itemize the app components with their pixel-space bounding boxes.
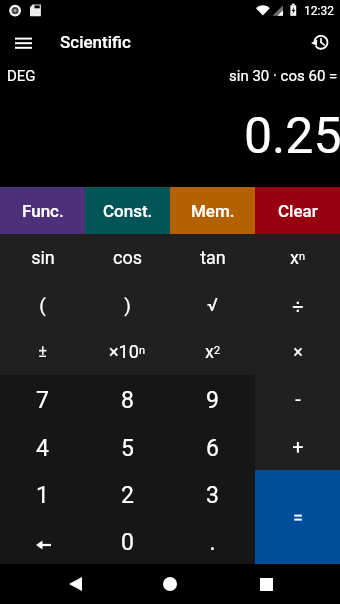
staticText: 4 [36, 435, 49, 462]
button[interactable]: Mem. [170, 187, 255, 234]
staticText: Func. [22, 201, 64, 221]
button[interactable]: 3 [170, 470, 255, 517]
staticText: n [139, 344, 146, 357]
staticText: 5 [121, 435, 134, 462]
staticText: 6 [206, 435, 219, 462]
staticText: sin 30 · cos 60 = [229, 67, 338, 85]
staticText: Clear [278, 201, 318, 221]
button[interactable]: = [255, 470, 340, 564]
staticText: Scientific [60, 32, 131, 52]
staticText: . [209, 529, 216, 556]
staticText: 8 [121, 387, 134, 414]
staticText: 1 [36, 482, 49, 509]
staticText: ×10 [109, 341, 139, 362]
button[interactable]: 2 [85, 470, 170, 517]
staticText: n [299, 250, 306, 263]
button[interactable]: 8 [85, 375, 170, 422]
staticText: = [293, 507, 303, 528]
button[interactable]: sin [0, 234, 85, 281]
staticText: ) [124, 294, 131, 316]
staticText: cos [113, 247, 142, 268]
staticText: - [295, 387, 301, 410]
staticText: 9 [206, 387, 219, 414]
button[interactable]: x [255, 234, 340, 281]
button[interactable]: Navigation menu [0, 22, 46, 62]
staticText: √ [207, 294, 218, 315]
staticText: 2 [121, 482, 134, 509]
staticText: ÷ [292, 295, 304, 318]
button[interactable]: History [294, 22, 340, 62]
staticText: Const. [103, 201, 153, 221]
staticText: 3 [206, 482, 219, 509]
staticText: 2 [214, 344, 221, 357]
button[interactable]: ( [0, 281, 85, 328]
staticText: tan [200, 247, 226, 268]
staticText: ± [38, 342, 47, 361]
button[interactable]: Backspace [0, 517, 85, 564]
button[interactable]: ×10 [85, 328, 170, 375]
button[interactable]: √ [170, 281, 255, 328]
button[interactable]: - [255, 375, 340, 422]
button[interactable]: 6 [170, 423, 255, 470]
button[interactable]: Home [135, 564, 205, 604]
staticText: 0 [121, 529, 134, 556]
button[interactable]: . [170, 517, 255, 564]
button[interactable]: tan [170, 234, 255, 281]
button[interactable]: cos [85, 234, 170, 281]
button[interactable]: ) [85, 281, 170, 328]
staticText: x [205, 341, 214, 362]
staticText: 7 [36, 387, 49, 414]
staticText: 0.25 [244, 107, 340, 166]
button[interactable]: Back [40, 564, 110, 604]
staticText: sin [31, 247, 55, 268]
button[interactable]: x [170, 328, 255, 375]
staticText: + [292, 435, 304, 458]
button[interactable]: ± [0, 328, 85, 375]
button[interactable]: 9 [170, 375, 255, 422]
staticText: DEG [7, 67, 36, 85]
button[interactable]: Func. [0, 187, 85, 234]
staticText: Mem. [191, 201, 235, 221]
button[interactable]: ÷ [255, 281, 340, 328]
button[interactable]: 5 [85, 423, 170, 470]
button[interactable]: Recent apps [230, 564, 300, 604]
button[interactable]: 0 [85, 517, 170, 564]
staticText: 12:32 [304, 4, 334, 18]
button[interactable]: × [255, 328, 340, 375]
button[interactable]: Clear [255, 187, 340, 234]
button[interactable]: + [255, 423, 340, 470]
staticText: x [290, 247, 299, 268]
staticText: ( [39, 294, 46, 316]
button[interactable]: Const. [85, 187, 170, 234]
button[interactable]: 7 [0, 375, 85, 422]
button[interactable]: 4 [0, 423, 85, 470]
staticText: × [293, 341, 303, 362]
button[interactable]: 1 [0, 470, 85, 517]
